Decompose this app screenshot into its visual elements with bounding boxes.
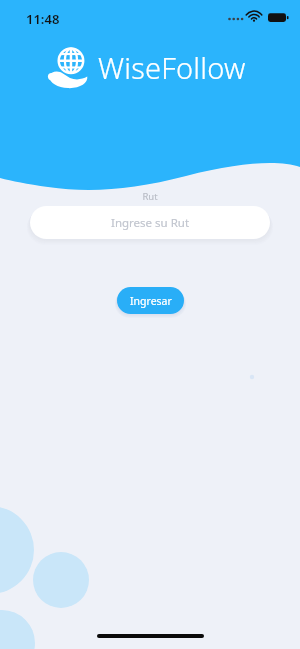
other: WiseFollow logo [46,43,94,91]
staticText: 11:48 [26,10,60,28]
staticText: Ingrese su Rut [111,215,190,231]
staticText: WiseFollow [98,48,246,87]
button[interactable]: Ingresar [117,287,184,314]
staticText: Rut [0,190,300,203]
staticText: Ingresar [130,294,172,308]
button[interactable]: Ingrese su Rut [30,206,270,239]
